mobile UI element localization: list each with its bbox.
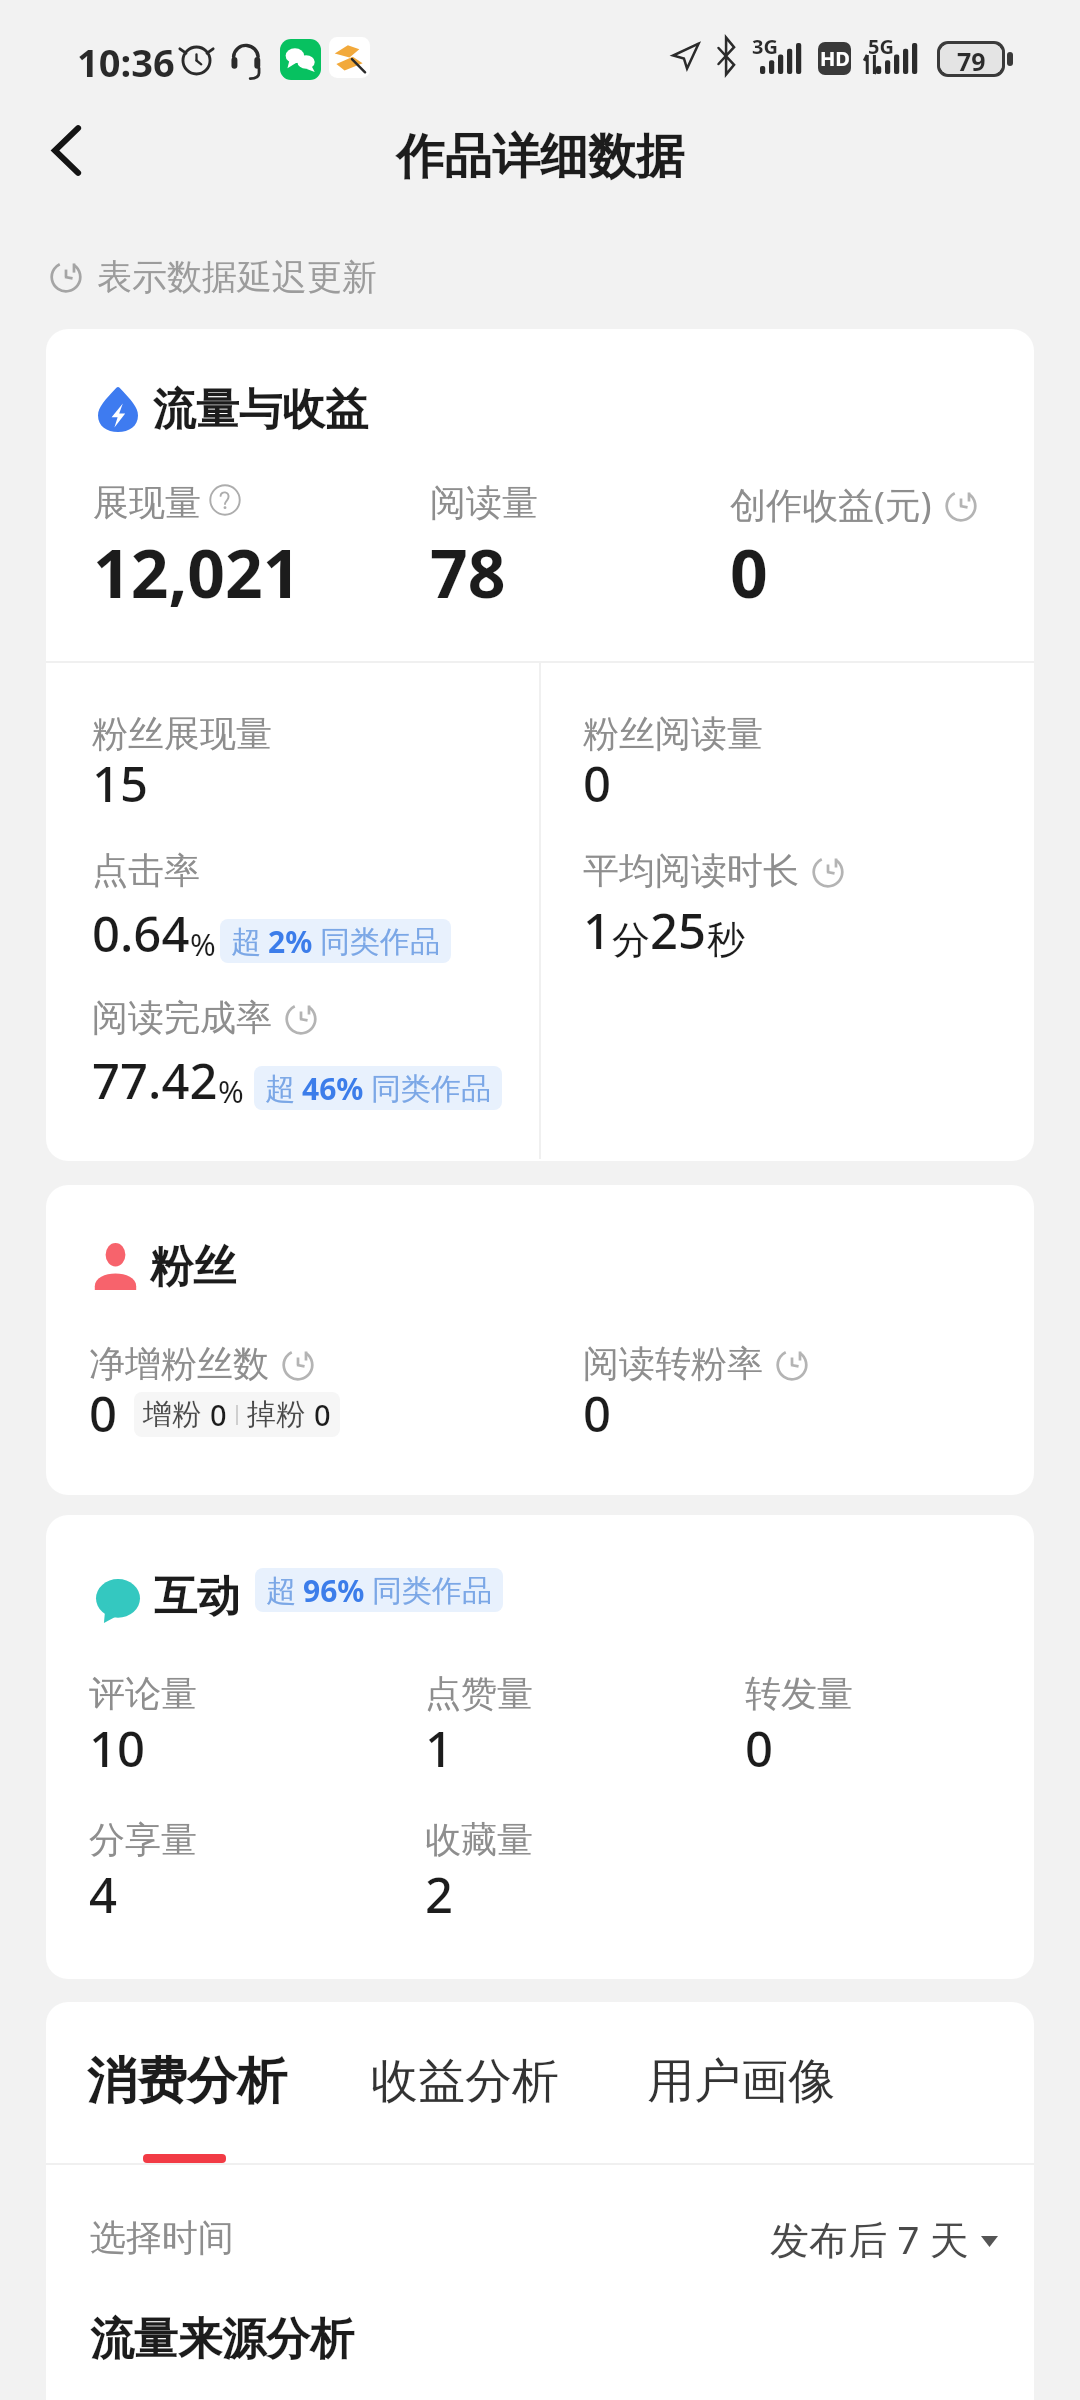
staticText: 转发量 xyxy=(745,1671,853,1716)
staticText: 掉粉 xyxy=(247,1396,305,1433)
staticText: 点赞量 xyxy=(425,1671,533,1716)
staticText: 粉丝阅读量 xyxy=(583,711,763,756)
staticText: 创作收益(元) xyxy=(730,480,932,529)
staticText: 1 xyxy=(425,1715,454,1782)
staticText: 发布后 7 天 xyxy=(770,2212,969,2265)
staticText: 净增粉丝数 xyxy=(89,1341,269,1386)
staticText: 10 xyxy=(89,1715,146,1782)
staticText: 分 xyxy=(612,916,650,964)
staticText: 超 xyxy=(231,923,261,961)
staticText: 4 xyxy=(89,1861,118,1928)
staticText: 96% xyxy=(303,1570,365,1611)
staticText: 0 xyxy=(210,1395,227,1434)
staticText: % xyxy=(190,923,216,965)
staticText: 79 xyxy=(957,44,986,74)
staticText: 0.64 xyxy=(92,900,190,967)
staticText: 78 xyxy=(430,527,506,617)
staticText: 评论量 xyxy=(89,1671,197,1716)
staticText: 0 xyxy=(583,750,612,817)
staticText: 同类作品 xyxy=(320,923,440,961)
staticText: 0 xyxy=(314,1395,331,1434)
staticText: 25 xyxy=(650,897,707,964)
staticText: 收藏量 xyxy=(425,1817,533,1862)
staticText: 消费分析 xyxy=(87,2050,287,2113)
staticText: 用户画像 xyxy=(647,2052,835,2111)
staticText: 2% xyxy=(268,921,313,962)
staticText: 阅读量 xyxy=(430,480,538,525)
staticText: 1 xyxy=(583,897,612,964)
button[interactable]: 用户画像 xyxy=(641,2048,841,2115)
staticText: 互动 xyxy=(154,1570,240,1624)
staticText: 12,021 xyxy=(93,527,301,617)
staticText: 超 xyxy=(266,1572,296,1610)
staticText: 15 xyxy=(92,750,149,817)
staticText: 阅读转粉率 xyxy=(583,1341,763,1386)
staticText: 粉丝 xyxy=(150,1240,236,1294)
staticText: 同类作品 xyxy=(372,1572,492,1610)
staticText: 流量与收益 xyxy=(153,383,368,437)
staticText: 增粉 xyxy=(143,1396,201,1433)
button[interactable]: 展现量说明 xyxy=(209,484,241,516)
staticText: 0 xyxy=(745,1715,774,1782)
staticText: 超 xyxy=(265,1070,295,1108)
staticText: 10:36 xyxy=(77,36,175,88)
staticText: 0 xyxy=(583,1380,612,1447)
staticText: 作品详细数据 xyxy=(396,127,684,187)
staticText: 同类作品 xyxy=(371,1070,491,1108)
staticText: 秒 xyxy=(707,916,745,964)
staticText: 3G xyxy=(752,33,778,60)
staticText: 77.42 xyxy=(92,1047,218,1114)
button[interactable]: Back xyxy=(21,105,111,195)
staticText: 收益分析 xyxy=(371,2052,559,2111)
staticText: 流量来源分析 xyxy=(90,2312,354,2367)
staticText: 展现量 xyxy=(93,480,201,525)
staticText: 选择时间 xyxy=(90,2215,234,2260)
button[interactable]: 发布后 7 天 xyxy=(764,2206,1004,2271)
staticText: 粉丝展现量 xyxy=(92,711,272,756)
staticText: 0 xyxy=(89,1380,118,1447)
staticText: 平均阅读时长 xyxy=(583,848,799,893)
button[interactable]: 消费分析 xyxy=(81,2046,293,2117)
button[interactable]: 收益分析 xyxy=(365,2048,565,2115)
staticText: 46% xyxy=(302,1068,364,1109)
staticText: HD xyxy=(820,45,850,72)
staticText: % xyxy=(218,1070,244,1112)
staticText: 表示数据延迟更新 xyxy=(97,255,377,299)
staticText: 2 xyxy=(425,1861,454,1928)
staticText: 分享量 xyxy=(89,1817,197,1862)
staticText: 阅读完成率 xyxy=(92,995,272,1040)
staticText: 5G xyxy=(868,33,894,60)
staticText: 点击率 xyxy=(92,848,200,893)
staticText: 0 xyxy=(730,527,768,617)
